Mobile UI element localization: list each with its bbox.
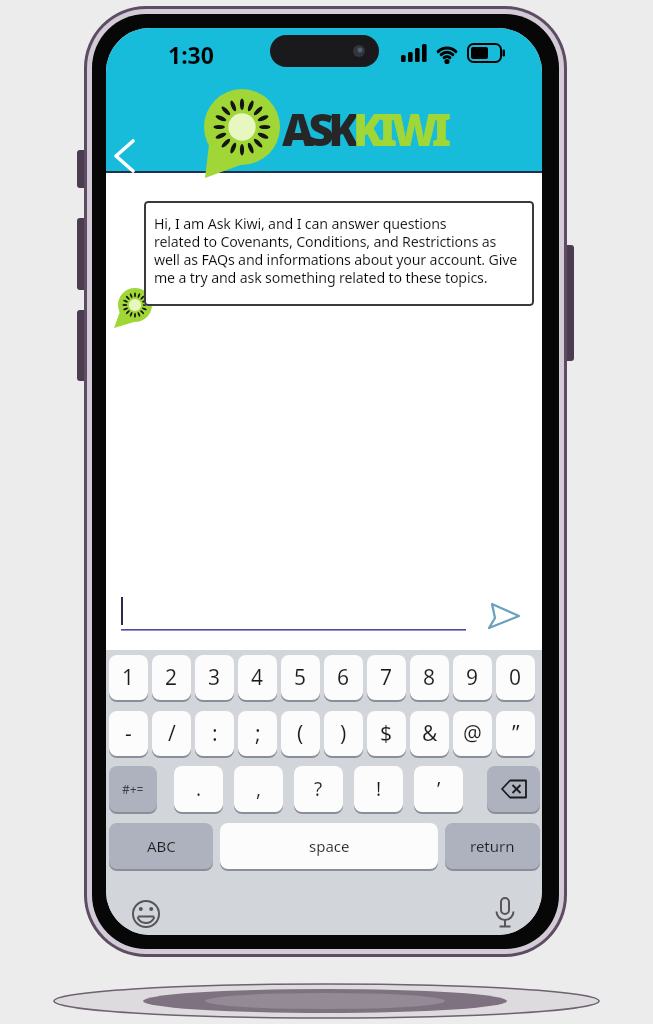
staticText: ; — [255, 719, 261, 748]
button[interactable] — [480, 594, 526, 636]
button[interactable]: ” — [496, 711, 535, 756]
button[interactable]: #+= — [109, 766, 157, 812]
button[interactable]: 3 — [195, 655, 234, 700]
button[interactable]: 1 — [109, 655, 148, 700]
button[interactable]: 7 — [367, 655, 406, 700]
button[interactable]: ABC — [109, 823, 213, 869]
button[interactable]: ’ — [414, 766, 463, 812]
button[interactable]: ; — [238, 711, 277, 756]
staticText: space — [309, 836, 350, 856]
staticText: 1 — [122, 663, 135, 692]
staticText: ) — [340, 719, 347, 748]
staticText: 7 — [380, 663, 393, 692]
staticText: 9 — [466, 663, 479, 692]
button[interactable] — [144, 201, 534, 306]
staticText: 2 — [165, 663, 178, 692]
staticText: $ — [380, 719, 393, 748]
staticText: 0 — [509, 663, 522, 692]
staticText: @ — [463, 719, 482, 748]
button[interactable]: 5 — [281, 655, 320, 700]
staticText: 4 — [251, 663, 264, 692]
staticText: 6 — [337, 663, 350, 692]
staticText: ’ — [437, 776, 441, 802]
button[interactable]: $ — [367, 711, 406, 756]
button[interactable] — [487, 766, 540, 812]
staticText: ” — [512, 719, 520, 748]
button[interactable]: @ — [453, 711, 492, 756]
button[interactable]: ( — [281, 711, 320, 756]
staticText: : — [212, 719, 218, 748]
button[interactable] — [108, 134, 142, 178]
button[interactable]: . — [174, 766, 223, 812]
staticText: 8 — [423, 663, 436, 692]
button[interactable]: 2 — [152, 655, 191, 700]
staticText: ? — [314, 776, 323, 802]
staticText: ! — [376, 776, 382, 802]
button[interactable]: , — [234, 766, 283, 812]
staticText: , — [256, 776, 262, 802]
button[interactable]: : — [195, 711, 234, 756]
button[interactable]: ? — [294, 766, 343, 812]
staticText: . — [196, 776, 202, 802]
staticText: return — [470, 836, 515, 856]
button[interactable]: - — [109, 711, 148, 756]
button[interactable]: 9 — [453, 655, 492, 700]
staticText: 1:30 — [168, 39, 214, 70]
staticText: Hi, I am Ask Kiwi, and I can answer ques… — [154, 214, 518, 287]
button[interactable]: ) — [324, 711, 363, 756]
button[interactable]: 0 — [496, 655, 535, 700]
button[interactable]: space — [220, 823, 438, 869]
button[interactable]: return — [445, 823, 540, 869]
staticText: ASKKIWI — [282, 99, 446, 159]
button[interactable]: 6 — [324, 655, 363, 700]
staticText: #+= — [122, 781, 144, 797]
staticText: / — [168, 719, 176, 748]
button[interactable]: & — [410, 711, 449, 756]
staticText: 5 — [294, 663, 307, 692]
button[interactable]: 8 — [410, 655, 449, 700]
staticText: 3 — [208, 663, 221, 692]
staticText: ( — [297, 719, 304, 748]
button[interactable]: 4 — [238, 655, 277, 700]
button[interactable]: ! — [354, 766, 403, 812]
staticText: ABC — [147, 836, 176, 856]
button[interactable]: / — [152, 711, 191, 756]
staticText: - — [125, 719, 132, 748]
staticText: & — [422, 719, 438, 748]
